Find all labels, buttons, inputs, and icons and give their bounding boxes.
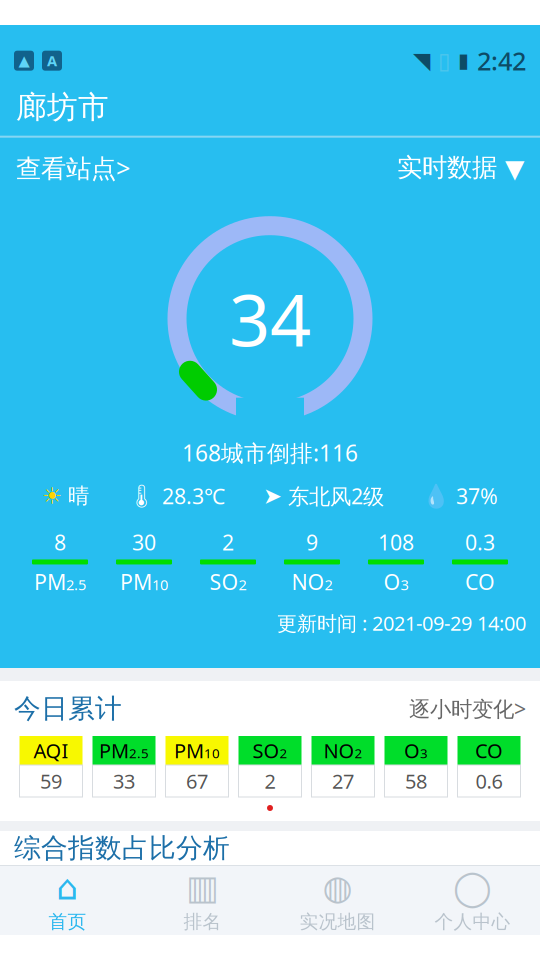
staticText: 27 xyxy=(332,768,354,794)
staticText: 2 xyxy=(354,744,362,762)
staticText: 58 xyxy=(405,768,427,794)
staticText: 实况地图 xyxy=(299,910,375,933)
staticText: O xyxy=(383,567,400,596)
staticText: 2 xyxy=(238,575,246,594)
staticText: 2 xyxy=(264,768,275,794)
staticText: 30 xyxy=(132,528,156,556)
staticText: 28.3℃ xyxy=(162,482,225,510)
staticText: 首页 xyxy=(48,910,86,933)
staticText: ◯ xyxy=(453,868,492,907)
staticText: 个人中心 xyxy=(434,910,510,933)
staticText: 34 xyxy=(229,271,311,366)
staticText: 10 xyxy=(152,575,168,594)
staticText: O xyxy=(404,737,420,764)
staticText: 3 xyxy=(420,744,428,762)
staticText: PM xyxy=(99,737,129,764)
staticText: 3 xyxy=(400,575,408,594)
staticText: 2 xyxy=(324,575,332,594)
staticText: 33 xyxy=(113,768,135,794)
staticText: ◥ xyxy=(413,48,430,73)
staticText: SO xyxy=(209,567,238,596)
staticText: 37% xyxy=(456,482,498,510)
button[interactable]: 查看站点> xyxy=(16,143,130,192)
staticText: 今日累计 xyxy=(14,692,122,725)
staticText: 东北风2级 xyxy=(288,482,384,510)
staticText: 9 xyxy=(306,528,318,556)
staticText: 0.6 xyxy=(475,768,502,794)
staticText: ☀ xyxy=(42,483,62,509)
staticText: PM xyxy=(34,567,66,596)
staticText: 查看站点> xyxy=(16,151,130,184)
staticText: 10 xyxy=(204,744,220,762)
staticText: 2.5 xyxy=(129,744,149,762)
staticText: ➤ xyxy=(263,483,282,509)
staticText: 晴 xyxy=(68,483,89,509)
staticText: 排名 xyxy=(183,910,221,933)
staticText: 💧 xyxy=(422,483,450,509)
staticText: 67 xyxy=(186,768,208,794)
staticText: SO xyxy=(252,737,279,764)
staticText: 综合指数占比分析 xyxy=(14,832,230,864)
staticText: 更新时间 : 2021-09-29 14:00 xyxy=(277,610,526,636)
staticText: A xyxy=(47,51,57,70)
button[interactable]: ◍ xyxy=(270,865,405,935)
staticText: PM xyxy=(174,737,204,764)
button[interactable]: 实时数据 ▼ xyxy=(397,144,524,191)
staticText: CO xyxy=(465,567,495,596)
staticText: ◍ xyxy=(322,868,352,907)
button[interactable]: ◯ xyxy=(405,865,540,935)
staticText: 🌡 xyxy=(127,483,156,509)
staticText: AQI xyxy=(33,737,68,764)
staticText: 108 xyxy=(378,528,414,556)
staticText: 8 xyxy=(54,528,66,556)
staticText: 2:42 xyxy=(477,44,526,77)
button[interactable]: 逐小时变化> xyxy=(409,688,526,729)
staticText: ▮ xyxy=(458,49,469,72)
staticText: ▲ xyxy=(18,52,29,69)
staticText: 0.3 xyxy=(465,528,495,556)
staticText: NO xyxy=(323,737,354,764)
staticText: 168城市倒排:116 xyxy=(182,438,358,468)
staticText: 逐小时变化> xyxy=(409,694,526,723)
staticText: 2.5 xyxy=(66,575,86,594)
button[interactable]: ▥ xyxy=(135,865,270,935)
staticText: NO xyxy=(291,567,324,596)
staticText: 廊坊市 xyxy=(16,88,109,126)
staticText: PM xyxy=(120,567,152,596)
staticText: 实时数据 ▼ xyxy=(397,152,524,183)
staticText: 59 xyxy=(40,768,62,794)
staticText: 2 xyxy=(222,528,234,556)
staticText: CO xyxy=(475,737,503,764)
staticText: ▥ xyxy=(186,868,219,907)
staticText: ⌂ xyxy=(56,868,78,907)
staticText: 2 xyxy=(279,744,287,762)
staticText: ▯ xyxy=(438,48,450,73)
button[interactable]: ⌂ xyxy=(0,865,135,935)
